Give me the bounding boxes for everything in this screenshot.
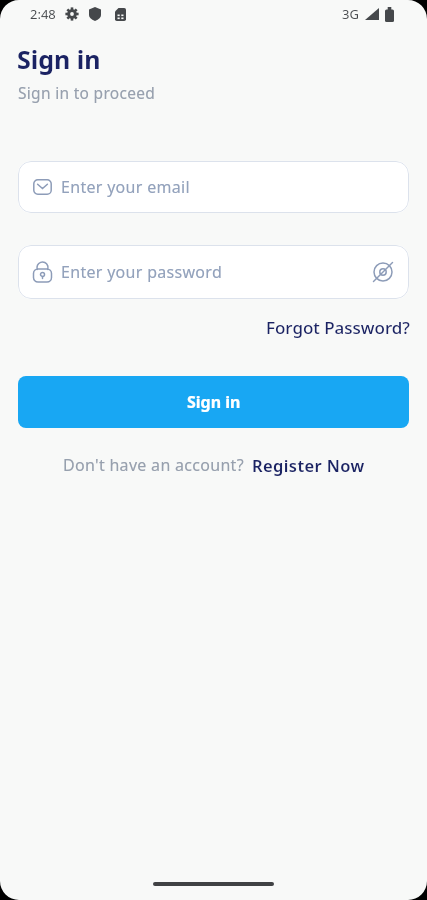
button[interactable]: Enter your password	[18, 245, 409, 299]
button[interactable]: Forgot Password?	[262, 312, 414, 343]
staticText: Enter your email	[61, 176, 190, 198]
staticText: Sign in	[17, 42, 101, 76]
staticText: Enter your password	[61, 261, 223, 283]
staticText: Register Now	[252, 454, 365, 476]
button[interactable]: Register Now	[252, 454, 365, 476]
staticText: Don't have an account?	[63, 454, 244, 476]
staticText: Forgot Password?	[266, 316, 410, 339]
staticText: 2:48	[30, 5, 56, 23]
staticText: Sign in to proceed	[18, 82, 156, 103]
button[interactable]: Enter your email	[18, 161, 409, 213]
button[interactable]: Sign in	[18, 376, 409, 428]
button[interactable]	[371, 260, 395, 284]
staticText: Sign in	[187, 391, 241, 413]
staticText: 3G	[342, 5, 359, 23]
